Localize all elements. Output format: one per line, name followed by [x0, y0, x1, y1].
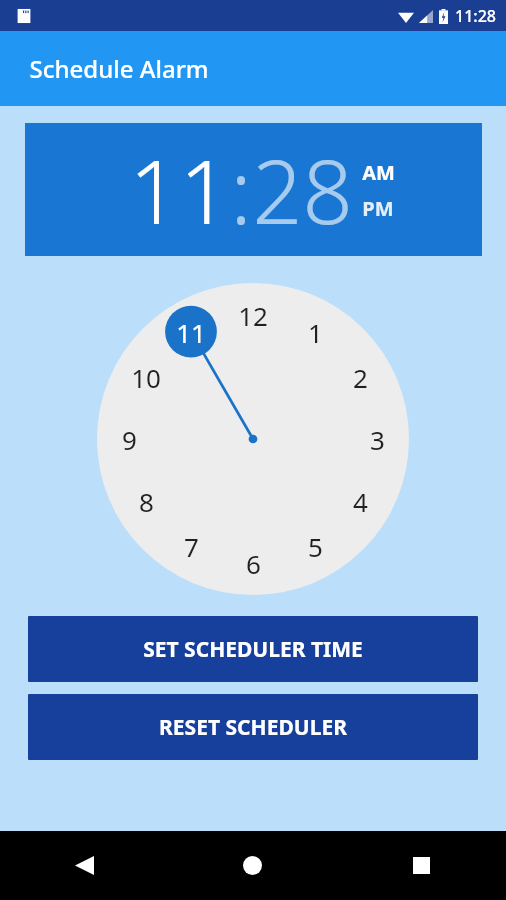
staticText: Schedule Alarm — [29, 52, 209, 85]
button[interactable]: 11 — [25, 123, 482, 256]
button[interactable]: 28 — [252, 130, 353, 250]
button[interactable]: RESET SCHEDULER — [28, 694, 478, 760]
staticText: 6 — [246, 546, 261, 581]
staticText: : — [230, 130, 252, 250]
staticText: 5 — [308, 529, 323, 564]
staticText: 11 — [176, 315, 206, 350]
button[interactable]: 12 — [97, 283, 409, 595]
staticText: SET SCHEDULER TIME — [143, 635, 363, 664]
staticText: 8 — [139, 484, 154, 519]
staticText: 2 — [353, 360, 368, 395]
staticText: RESET SCHEDULER — [159, 713, 347, 742]
staticText: 12 — [238, 298, 268, 333]
button[interactable]: 11 — [129, 130, 230, 250]
staticText: 10 — [131, 360, 161, 395]
staticText: 1 — [308, 315, 323, 350]
staticText: 11:28 — [455, 5, 496, 27]
staticText: 9 — [122, 422, 137, 457]
button[interactable]: PM — [362, 195, 394, 222]
button[interactable]: Back — [0, 831, 168, 900]
button[interactable]: SET SCHEDULER TIME — [28, 616, 478, 682]
button[interactable]: Home — [168, 831, 337, 900]
button[interactable]: Recent apps — [337, 831, 506, 900]
staticText: 7 — [184, 529, 199, 564]
button[interactable]: AM — [362, 159, 395, 186]
staticText: 4 — [353, 484, 368, 519]
staticText: 3 — [370, 422, 385, 457]
